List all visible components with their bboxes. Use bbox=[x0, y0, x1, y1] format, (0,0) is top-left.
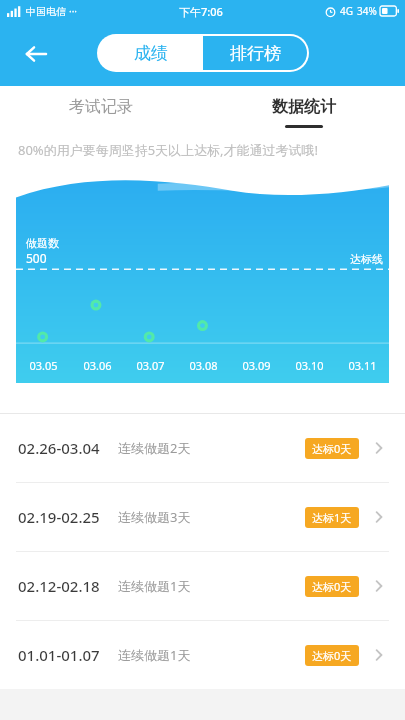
staticText: 达标0天 bbox=[125, 102, 165, 117]
button[interactable]: 排行榜 bbox=[203, 36, 307, 70]
staticText: 连续做题1天 bbox=[118, 577, 191, 595]
staticText: 达标1天 bbox=[312, 510, 352, 525]
staticText: 连续做题2天 bbox=[118, 439, 191, 457]
staticText: 03.08 bbox=[189, 358, 218, 373]
staticText: 达标线 bbox=[350, 252, 383, 266]
staticText: 本周做题联合 bbox=[18, 100, 108, 119]
button[interactable]: 01.01-01.07 bbox=[0, 621, 405, 689]
staticText: 03.11 bbox=[348, 358, 377, 373]
staticText: 500 bbox=[26, 250, 47, 266]
button[interactable]: Back bbox=[14, 32, 58, 76]
staticText: ··· bbox=[69, 4, 78, 18]
staticText: 成绩 bbox=[134, 43, 168, 64]
staticText: 80%的用户要每周坚持5天以上达标,才能通过考试哦! bbox=[18, 141, 319, 159]
staticText: 34% bbox=[357, 4, 377, 18]
staticText: 02.26-03.04 bbox=[18, 438, 100, 458]
staticText: 01.01-01.07 bbox=[18, 645, 100, 665]
staticText: 03.07 bbox=[136, 358, 165, 373]
staticText: 03.10 bbox=[295, 358, 324, 373]
staticText: 达标0天 bbox=[312, 441, 352, 456]
button[interactable]: 数据统计 bbox=[202, 86, 405, 128]
staticText: 排行榜 bbox=[230, 43, 281, 64]
staticText: 02.12-02.18 bbox=[18, 576, 100, 596]
button[interactable]: 02.26-03.04 bbox=[0, 414, 405, 483]
staticText: 考试记录 bbox=[69, 97, 133, 117]
button[interactable]: 02.12-02.18 bbox=[0, 552, 405, 621]
staticText: 03.05 bbox=[29, 358, 58, 373]
staticText: 4G bbox=[340, 4, 353, 18]
staticText: 连续做题3天 bbox=[118, 508, 191, 526]
staticText: 03.06 bbox=[83, 358, 112, 373]
staticText: 02.19-02.25 bbox=[18, 507, 100, 527]
staticText: 达标0天 bbox=[312, 648, 352, 663]
staticText: 连续做题1天 bbox=[118, 646, 191, 664]
staticText: 03.09 bbox=[242, 358, 271, 373]
staticText: 数据统计 bbox=[272, 97, 336, 117]
staticText: 中国电信 bbox=[26, 5, 66, 18]
button[interactable]: 考试记录 bbox=[0, 86, 202, 128]
staticText: 做题数 bbox=[26, 236, 59, 250]
staticText: 达标0天 bbox=[312, 579, 352, 594]
button[interactable]: 02.19-02.25 bbox=[0, 483, 405, 552]
button[interactable]: 成绩 bbox=[99, 36, 203, 70]
staticText: 下午7:06 bbox=[179, 4, 223, 19]
